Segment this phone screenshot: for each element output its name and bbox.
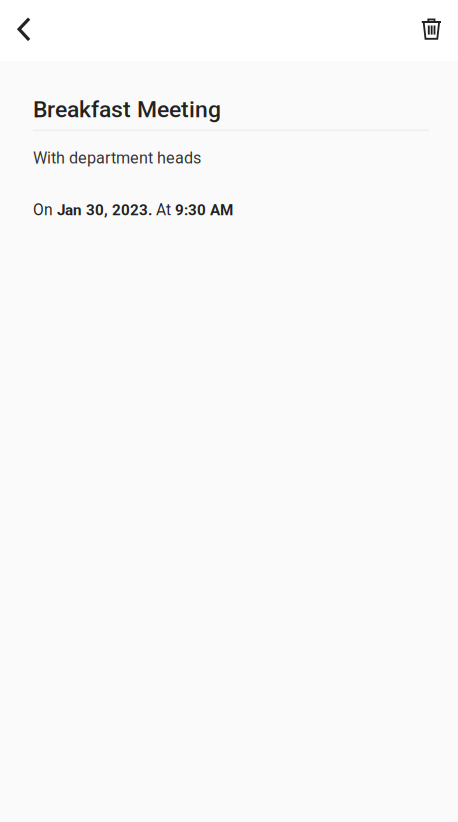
button[interactable]: Delete [408,8,458,52]
staticText: 9:30 AM [175,201,233,219]
staticText: On [33,201,57,219]
staticText: Breakfast Meeting [33,96,221,123]
staticText: Jan 30, 2023. [57,201,152,219]
button[interactable]: Back [0,8,47,52]
staticText: At [152,201,175,219]
staticText: With department heads [33,148,201,167]
